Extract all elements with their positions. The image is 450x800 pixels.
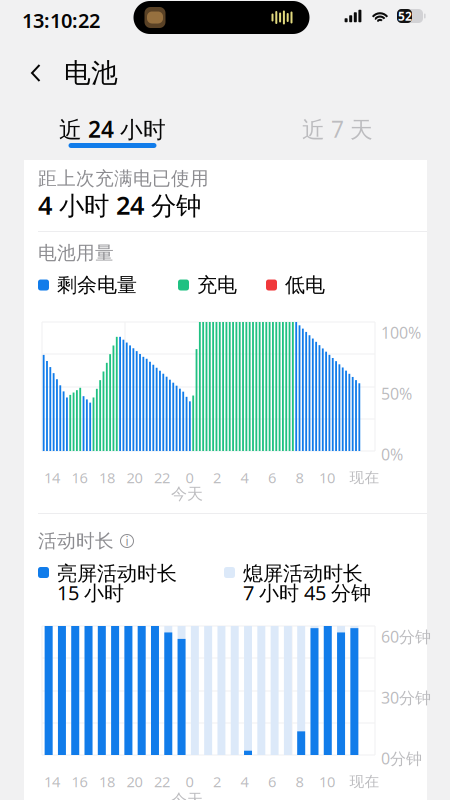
staticText: 6 <box>268 468 276 487</box>
staticText: 100% <box>381 322 421 343</box>
staticText: 0 <box>185 772 193 791</box>
staticText: 30分钟 <box>381 687 431 708</box>
staticText: 2 <box>213 468 221 487</box>
staticText: 电池用量 <box>38 241 114 264</box>
staticText: 10 <box>319 468 335 487</box>
staticText: 电池 <box>64 57 118 89</box>
staticText: 18 <box>99 772 115 791</box>
staticText: 8 <box>295 772 303 791</box>
staticText: 15 小时 <box>57 579 124 606</box>
staticText: 低电 <box>285 273 325 297</box>
staticText: i <box>125 533 128 549</box>
staticText: 22 <box>154 468 170 487</box>
button[interactable]: 返回 <box>18 46 54 100</box>
staticText: 熄屏活动时长 <box>243 561 363 586</box>
staticText: 活动时长 <box>38 529 114 552</box>
staticText: 2 <box>213 772 221 791</box>
staticText: 20 <box>126 772 142 791</box>
staticText: 16 <box>71 468 87 487</box>
staticText: 6 <box>268 772 276 791</box>
staticText: 52 <box>398 8 412 24</box>
staticText: 10 <box>319 772 335 791</box>
staticText: 22 <box>154 772 170 791</box>
staticText: 现在 <box>349 468 379 486</box>
staticText: 剩余电量 <box>57 273 137 297</box>
staticText: 近 7 天 <box>302 114 373 144</box>
staticText: 50% <box>381 383 412 404</box>
staticText: 4 <box>240 468 248 487</box>
staticText: 8 <box>295 468 303 487</box>
staticText: 0% <box>381 444 403 465</box>
staticText: 18 <box>99 468 115 487</box>
staticText: 距上次充满电已使用 <box>38 167 209 190</box>
staticText: 60分钟 <box>381 626 431 647</box>
staticText: 近 24 小时 <box>59 114 166 144</box>
button[interactable]: 近 24 小时 <box>0 100 225 160</box>
staticText: 16 <box>71 772 87 791</box>
staticText: 14 <box>44 772 60 791</box>
staticText: 14 <box>44 468 60 487</box>
staticText: 亮屏活动时长 <box>57 561 177 586</box>
staticText: 今天 <box>171 484 203 504</box>
staticText: 7 小时 45 分钟 <box>243 579 371 606</box>
staticText: 13:10:22 <box>22 7 100 34</box>
staticText: 0分钟 <box>381 748 422 769</box>
staticText: 现在 <box>349 772 379 790</box>
button[interactable]: 近 7 天 <box>225 100 450 160</box>
staticText: 4 <box>240 772 248 791</box>
staticText: 今天 <box>171 790 203 800</box>
staticText: 20 <box>126 468 142 487</box>
staticText: 4 小时 24 分钟 <box>38 188 201 222</box>
staticText: 充电 <box>197 273 237 297</box>
staticText: 0 <box>185 468 193 487</box>
